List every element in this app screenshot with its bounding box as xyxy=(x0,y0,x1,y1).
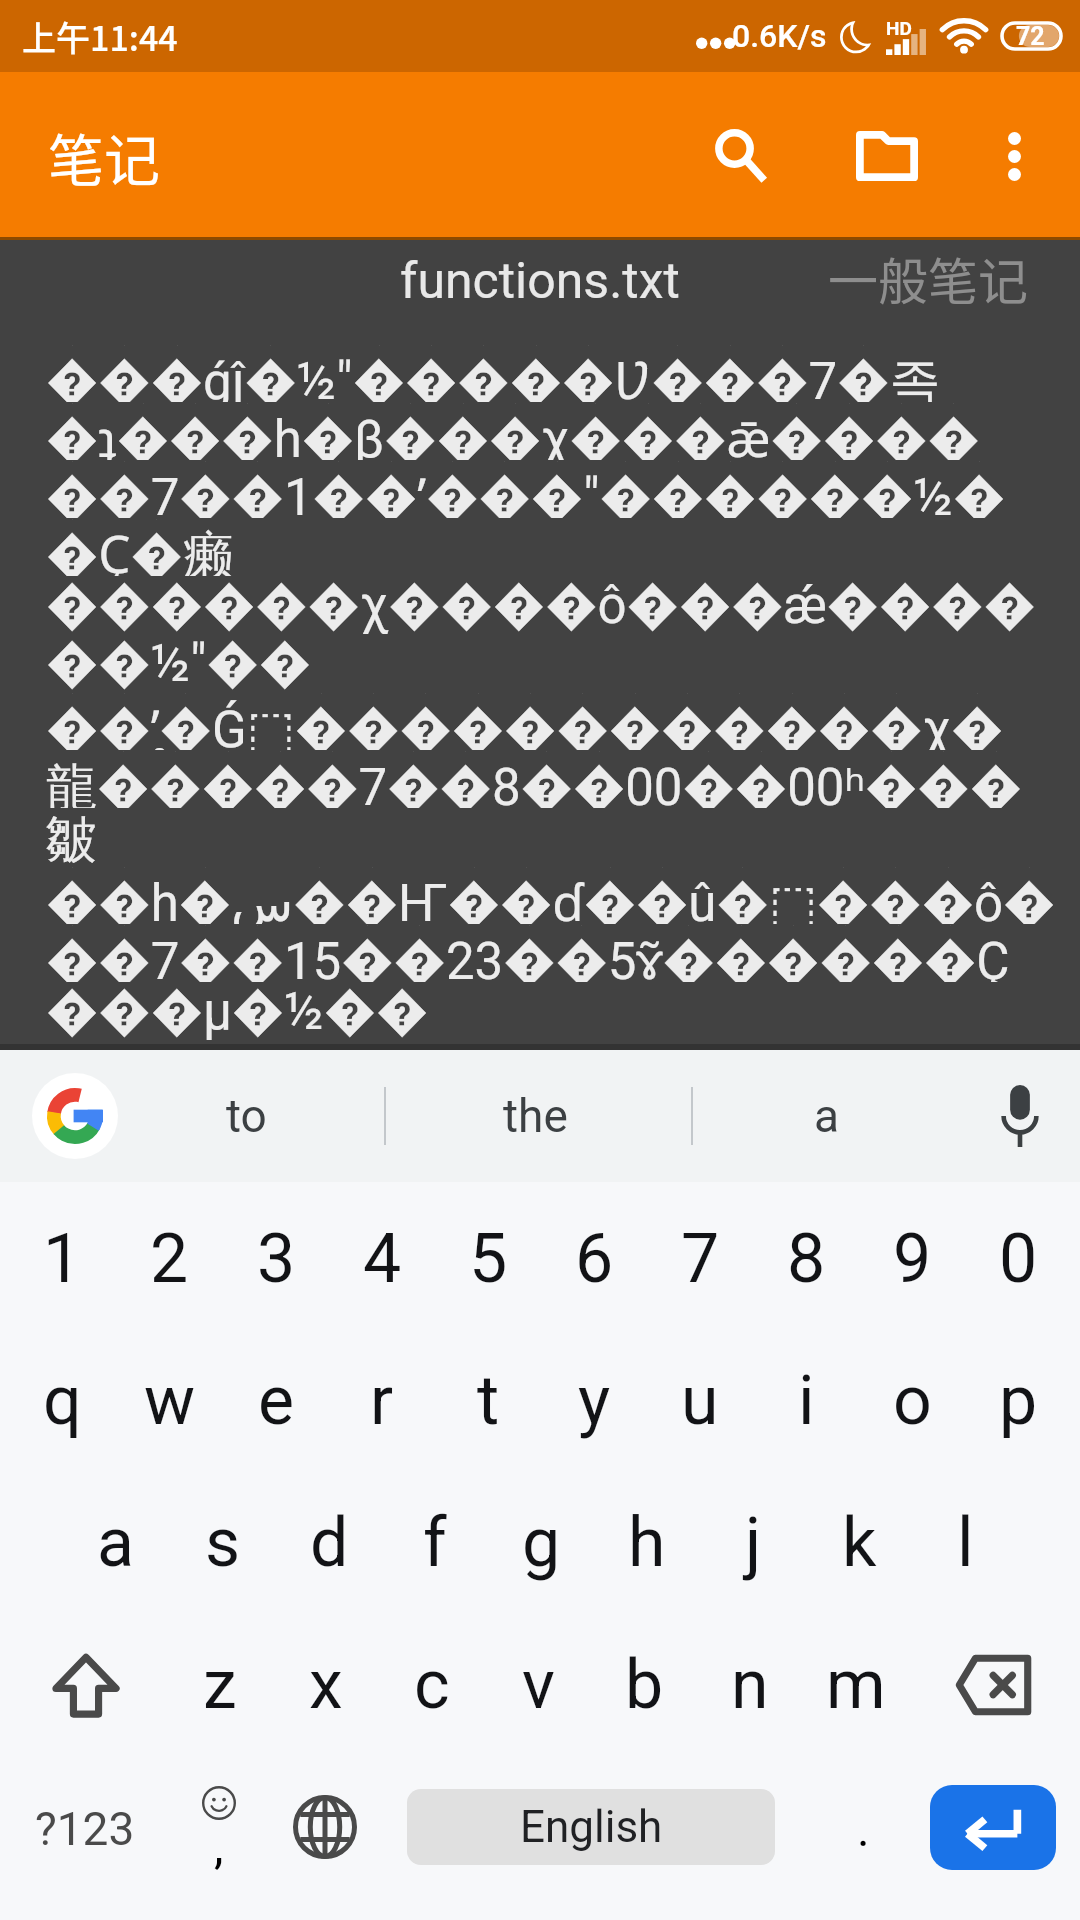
staticText: 7 xyxy=(681,1219,720,1299)
button[interactable]: 0 xyxy=(965,1188,1071,1330)
staticText: n xyxy=(731,1645,769,1725)
button[interactable]: k xyxy=(806,1472,912,1614)
staticText: i xyxy=(798,1361,815,1441)
staticText: ������χ����ô���ǽ���� xyxy=(46,576,1036,634)
button[interactable]: Google xyxy=(0,1050,150,1182)
staticText: a xyxy=(97,1503,134,1583)
staticText: e xyxy=(258,1361,295,1441)
button[interactable]: s xyxy=(169,1472,276,1614)
button[interactable]: Change language xyxy=(268,1756,382,1898)
button[interactable]: More options xyxy=(948,86,1080,226)
staticText: q xyxy=(43,1361,82,1441)
button[interactable]: ?123 xyxy=(0,1756,170,1898)
button[interactable]: i xyxy=(753,1330,859,1472)
button[interactable]: Enter xyxy=(930,1785,1056,1870)
staticText: , xyxy=(214,1818,224,1874)
button[interactable]: d xyxy=(276,1472,382,1614)
button[interactable]: 6 xyxy=(541,1188,647,1330)
button[interactable]: 9 xyxy=(859,1188,965,1330)
button[interactable]: z xyxy=(167,1614,273,1756)
staticText: z xyxy=(203,1645,237,1725)
button[interactable]: y xyxy=(541,1330,647,1472)
button[interactable]: v xyxy=(485,1614,591,1756)
button[interactable]: g xyxy=(488,1472,594,1614)
button[interactable]: t xyxy=(435,1330,541,1472)
staticText: j xyxy=(745,1503,762,1583)
button[interactable]: w xyxy=(116,1330,223,1472)
button[interactable]: 3 xyxy=(223,1188,329,1330)
button[interactable]: p xyxy=(965,1330,1071,1472)
staticText: 上午11:44 xyxy=(22,12,178,61)
staticText: o xyxy=(893,1361,932,1441)
button[interactable]: j xyxy=(700,1472,806,1614)
button[interactable]: n xyxy=(697,1614,803,1756)
button[interactable]: the xyxy=(386,1050,691,1182)
button[interactable]: b xyxy=(591,1614,697,1756)
staticText: ?123 xyxy=(35,1802,135,1856)
button[interactable]: Search xyxy=(656,86,826,226)
staticText: 3 xyxy=(257,1219,296,1299)
button[interactable]: 8 xyxy=(753,1188,859,1330)
staticText: p xyxy=(999,1361,1038,1441)
staticText: 9 xyxy=(893,1219,932,1299)
staticText: ��ʹ̥�Ǵ⬚������������χ� xyxy=(46,692,1004,750)
button[interactable]: 7 xyxy=(647,1188,753,1330)
staticText: 龍�����7��8��00��00ʰ��� xyxy=(46,750,1022,808)
button[interactable]: 5 xyxy=(435,1188,541,1330)
staticText: 2 xyxy=(150,1219,189,1299)
staticText: 一般笔记 xyxy=(828,242,1028,314)
button[interactable]: e xyxy=(223,1330,329,1472)
staticText: v xyxy=(522,1645,555,1725)
button[interactable]: 2 xyxy=(116,1188,223,1330)
button[interactable]: h xyxy=(594,1472,700,1614)
staticText: ��½″�� xyxy=(46,634,312,692)
button[interactable]: English xyxy=(407,1789,775,1865)
staticText: f xyxy=(423,1503,447,1583)
button[interactable]: 4 xyxy=(329,1188,435,1330)
staticText: 皺 xyxy=(46,808,97,866)
staticText: k xyxy=(842,1503,877,1583)
staticText: ��7��15��23��5ɤ̃������Ç xyxy=(46,924,1010,982)
staticText: a xyxy=(814,1089,840,1143)
staticText: d xyxy=(310,1503,349,1583)
staticText: the xyxy=(503,1089,568,1143)
staticText: m xyxy=(826,1645,886,1725)
staticText: u xyxy=(681,1361,719,1441)
button[interactable]: f xyxy=(382,1472,488,1614)
button[interactable]: Emoji and comma xyxy=(170,1756,268,1898)
staticText: 1 xyxy=(43,1219,82,1299)
staticText: English xyxy=(520,1801,663,1853)
button[interactable]: Folder xyxy=(826,86,948,226)
staticText: ��h�س��Ҥ��ɗ��û�⬚���ô�� xyxy=(46,866,1076,924)
button[interactable]: x xyxy=(273,1614,379,1756)
button[interactable]: a xyxy=(62,1472,169,1614)
staticText: h xyxy=(628,1503,666,1583)
button[interactable]: u xyxy=(647,1330,753,1472)
button[interactable]: a xyxy=(693,1050,960,1182)
staticText: c xyxy=(414,1645,450,1725)
button[interactable]: c xyxy=(379,1614,485,1756)
staticText: . xyxy=(857,1801,870,1857)
staticText: functions.txt xyxy=(400,252,680,311)
button[interactable]: . xyxy=(800,1756,926,1898)
button[interactable]: o xyxy=(859,1330,965,1472)
staticText: ��7��1��ʹ���″������½� xyxy=(46,460,1006,518)
staticText: 笔记 xyxy=(48,116,160,197)
staticText: t xyxy=(477,1361,500,1441)
staticText: ���μ�½�� xyxy=(46,982,429,1040)
staticText: r xyxy=(370,1361,394,1441)
staticText: to xyxy=(226,1089,267,1143)
button[interactable]: r xyxy=(329,1330,435,1472)
staticText: �Ç̥�癞 xyxy=(46,518,234,576)
staticText: 0 xyxy=(999,1219,1038,1299)
button[interactable]: q xyxy=(9,1330,116,1472)
button[interactable]: l xyxy=(912,1472,1018,1614)
button[interactable]: to xyxy=(150,1050,384,1182)
staticText: HD xyxy=(886,17,912,39)
button[interactable]: Voice input xyxy=(960,1050,1080,1182)
button[interactable]: m xyxy=(803,1614,909,1756)
button[interactable]: 1 xyxy=(9,1188,116,1330)
staticText: ���ǵĵ�½″�����Ʋ���7�족 xyxy=(46,344,941,402)
button[interactable]: Shift xyxy=(0,1614,167,1756)
button[interactable]: Backspace xyxy=(909,1614,1080,1756)
